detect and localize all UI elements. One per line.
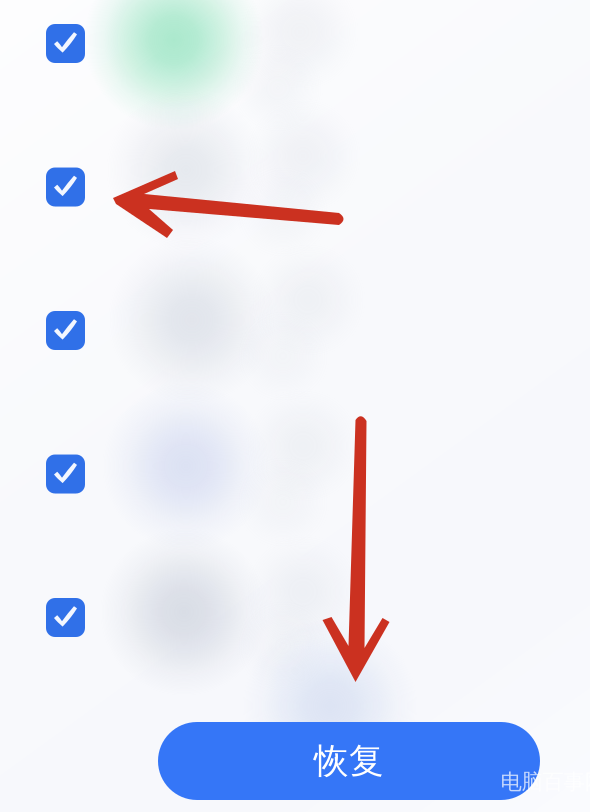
button[interactable]: Item 2, selected xyxy=(0,143,590,231)
button[interactable]: Item 3, selected xyxy=(0,286,590,374)
staticText: 电脑百事网 xyxy=(500,769,590,795)
button[interactable]: Item 1, selected xyxy=(0,0,590,87)
button[interactable]: Item 4, selected xyxy=(0,430,590,518)
staticText: 恢复 xyxy=(314,740,384,782)
button[interactable]: Item 5, selected xyxy=(0,573,590,661)
button[interactable]: 恢复 xyxy=(158,722,540,800)
